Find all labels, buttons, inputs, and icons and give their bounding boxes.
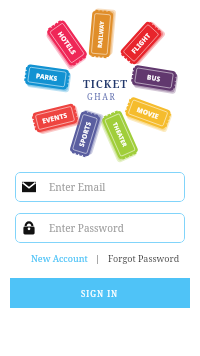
other: Password [22,221,36,235]
button[interactable]: Forgot Password [108,252,180,264]
staticText: Enter Email [49,180,106,194]
staticText: Forgot Password [108,252,180,264]
staticText: New Account [31,252,88,264]
staticText: Enter Password [49,221,124,235]
button[interactable]: New Account [31,252,88,264]
button[interactable]: Password [15,213,185,243]
staticText: | [88,252,108,264]
button[interactable]: Email [15,172,185,202]
staticText: SIGN IN [81,288,119,299]
staticText: TICKET [83,77,128,91]
other: Email [22,180,36,194]
staticText: GHAR [87,91,117,102]
button[interactable]: SIGN IN [10,278,190,308]
